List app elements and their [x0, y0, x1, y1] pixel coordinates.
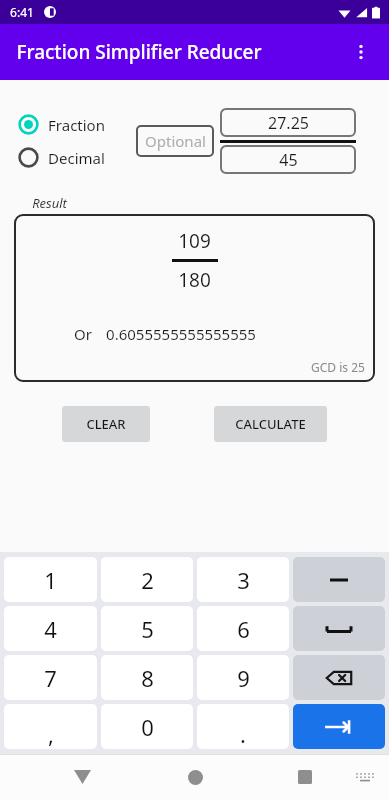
button[interactable]: Decimal: [18, 147, 130, 168]
button[interactable]: Minus: [293, 557, 385, 602]
staticText: Fraction Simplifier Reducer: [16, 39, 262, 65]
staticText: ,: [48, 719, 54, 749]
button[interactable]: 8: [101, 655, 193, 700]
staticText: 27.25: [268, 112, 309, 134]
staticText: GCD is 25: [311, 359, 365, 375]
button[interactable]: Home: [173, 755, 217, 799]
staticText: 3: [237, 565, 250, 595]
staticText: 1: [44, 565, 57, 595]
button[interactable]: Optional: [136, 125, 214, 157]
staticText: Optional: [145, 131, 206, 151]
staticText: 0.6055555555555555: [106, 324, 256, 344]
button[interactable]: Back: [60, 755, 104, 799]
staticText: 45: [279, 149, 298, 171]
button[interactable]: 2: [101, 557, 193, 602]
button[interactable]: 7: [4, 655, 97, 700]
staticText: 9: [237, 663, 250, 693]
button[interactable]: Space: [293, 606, 385, 651]
staticText: 180: [178, 267, 211, 293]
staticText: 109: [178, 228, 211, 254]
staticText: 0: [141, 712, 154, 742]
button[interactable]: CLEAR: [62, 406, 150, 442]
button[interactable]: 0: [101, 704, 193, 749]
staticText: 2: [141, 565, 154, 595]
staticText: 5: [141, 614, 154, 644]
button[interactable]: 27.25: [220, 108, 356, 137]
staticText: Or: [74, 324, 92, 344]
staticText: 6: [237, 614, 250, 644]
button[interactable]: 45: [220, 145, 356, 174]
staticText: CALCULATE: [235, 415, 306, 433]
button[interactable]: More options: [339, 30, 383, 74]
button[interactable]: 9: [197, 655, 289, 700]
button[interactable]: 5: [101, 606, 193, 651]
staticText: 6:41: [10, 4, 34, 20]
staticText: Fraction: [48, 115, 105, 135]
button[interactable]: .: [197, 704, 289, 749]
staticText: 7: [44, 663, 57, 693]
staticText: Result: [32, 194, 67, 212]
button[interactable]: ,: [4, 704, 97, 749]
button[interactable]: CALCULATE: [214, 406, 327, 442]
button[interactable]: Recent apps: [283, 755, 327, 799]
staticText: CLEAR: [86, 415, 126, 433]
staticText: 8: [141, 663, 154, 693]
button[interactable]: 1: [4, 557, 97, 602]
staticText: .: [240, 719, 246, 749]
button[interactable]: 3: [197, 557, 289, 602]
button[interactable]: Change keyboard: [347, 759, 383, 795]
button[interactable]: 4: [4, 606, 97, 651]
button[interactable]: Fraction: [18, 114, 130, 135]
staticText: Decimal: [48, 148, 105, 168]
staticText: 4: [44, 614, 57, 644]
button[interactable]: Next: [293, 704, 385, 749]
button[interactable]: 6: [197, 606, 289, 651]
button[interactable]: Backspace: [293, 655, 385, 700]
